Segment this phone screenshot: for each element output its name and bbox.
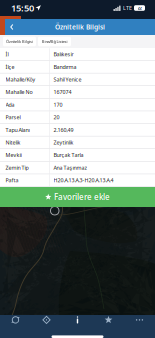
staticText: 170 [53, 101, 62, 108]
staticText: 15:50 [11, 2, 34, 14]
staticText: Balıkesir [53, 51, 73, 58]
button[interactable]: Konum [31, 312, 62, 327]
staticText: 20 [53, 114, 59, 121]
staticText: Ana Taşınmaz [53, 164, 87, 171]
button[interactable]: Back [5, 19, 19, 35]
button[interactable]: Öznitelik Bilgisi [3, 37, 36, 46]
staticText: Ada [5, 101, 14, 108]
staticText: Öznitelik Bilgisi [55, 23, 105, 31]
button[interactable]: Daha fazla [124, 312, 155, 327]
staticText: İlçe [5, 63, 14, 70]
staticText: Mahalle/Köy [5, 76, 35, 83]
staticText: Bina/Bğ Listesi [41, 39, 67, 44]
staticText: Sahil Yenice [53, 76, 81, 83]
staticText: Mahalle No [5, 88, 32, 96]
button[interactable]: Favorilere ekle [0, 187, 155, 207]
staticText: Tapu Alanı [5, 126, 29, 133]
staticText: Parsel [5, 114, 20, 121]
staticText: Bandırma [53, 63, 76, 70]
staticText: Favorilere ekle [54, 192, 110, 202]
staticText: Öznitelik Bilgisi [6, 39, 33, 44]
staticText: 167074 [53, 88, 71, 96]
staticText: İl [5, 51, 8, 58]
staticText: Nitelik [5, 139, 20, 146]
staticText: Pafta [5, 177, 18, 184]
staticText: H20.A.13.A.3-H20.A.13.A.4 [53, 177, 113, 184]
button[interactable]: Yenile [0, 312, 31, 327]
staticText: LTE [123, 4, 132, 12]
button[interactable]: Favoriler [93, 312, 124, 327]
button[interactable]: Bina/Bğ Listesi [38, 37, 71, 46]
staticText: 2.160,49 [53, 126, 73, 133]
staticText: Zeytinlik [53, 139, 73, 146]
button[interactable]: Bilgi [62, 312, 93, 327]
staticText: Zemin Tip [5, 164, 28, 171]
staticText: Burçak Tarla [53, 151, 83, 159]
staticText: Mevkii [5, 151, 21, 159]
staticText: 22 [137, 5, 141, 11]
